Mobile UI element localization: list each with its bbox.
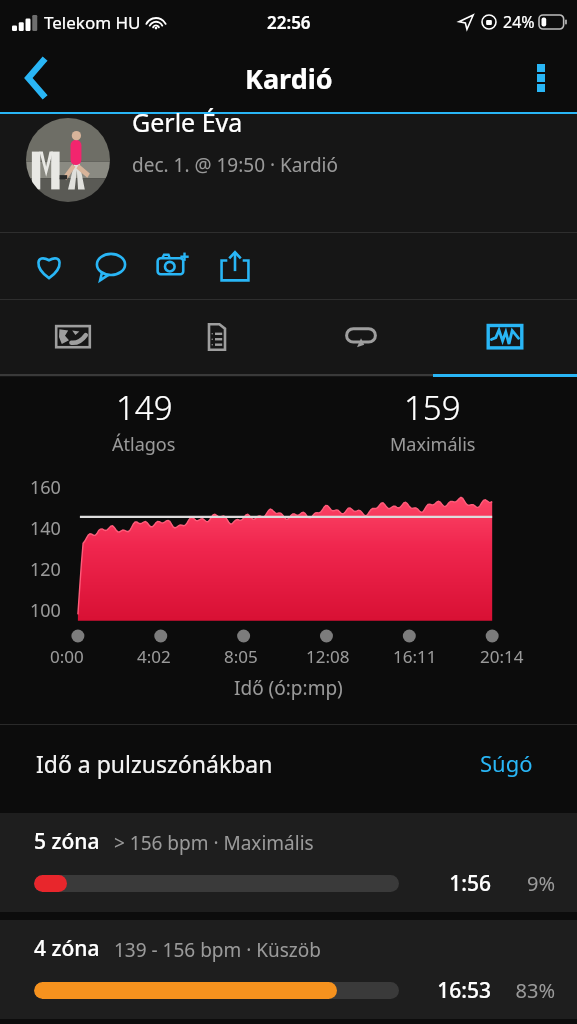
- staticText: > 156 bpm · Maximális: [114, 830, 314, 856]
- button[interactable]: Heart rate: [433, 300, 577, 374]
- button[interactable]: Map: [0, 300, 145, 374]
- staticText: 12:08: [306, 645, 350, 668]
- staticText: Maximális: [390, 432, 476, 457]
- staticText: 22:56: [267, 11, 311, 34]
- button[interactable]: Add photo: [142, 235, 204, 297]
- staticText: Telekom HU: [44, 11, 141, 34]
- staticText: 4 zóna: [34, 934, 100, 963]
- button[interactable]: Gerle Éva: [0, 114, 577, 232]
- staticText: 1:56: [419, 869, 491, 898]
- staticText: 83%: [501, 977, 555, 1004]
- button[interactable]: Back: [8, 50, 64, 106]
- button[interactable]: Share: [204, 235, 266, 297]
- button[interactable]: Laps: [289, 300, 433, 374]
- staticText: 100: [30, 598, 61, 624]
- button[interactable]: Like: [18, 235, 80, 297]
- button[interactable]: 5 zóna: [0, 813, 577, 912]
- staticText: Kardió: [245, 60, 333, 97]
- staticText: 149: [116, 385, 173, 430]
- staticText: Idő (ó:p:mp): [234, 675, 343, 701]
- staticText: 24%: [503, 11, 535, 33]
- button[interactable]: Súgó: [472, 740, 541, 786]
- staticText: Idő a pulzuszónákban: [36, 748, 472, 779]
- staticText: dec. 1. @ 19:50 · Kardió: [132, 152, 338, 178]
- staticText: Gerle Éva: [132, 105, 243, 139]
- staticText: 16:11: [393, 645, 437, 668]
- staticText: 120: [30, 557, 61, 583]
- staticText: 160: [30, 475, 61, 501]
- staticText: 4:02: [137, 645, 171, 668]
- staticText: 139 - 156 bpm · Küszöb: [114, 937, 321, 963]
- staticText: Átlagos: [112, 432, 176, 457]
- staticText: 9%: [501, 870, 555, 897]
- button[interactable]: Details: [145, 300, 289, 374]
- staticText: 159: [404, 385, 461, 430]
- staticText: 16:53: [419, 976, 491, 1005]
- staticText: 8:05: [224, 645, 258, 668]
- staticText: 0:00: [50, 645, 84, 668]
- staticText: Súgó: [480, 748, 533, 778]
- staticText: 20:14: [480, 645, 524, 668]
- staticText: 5 zóna: [34, 827, 100, 856]
- button[interactable]: Comment: [80, 235, 142, 297]
- button[interactable]: More options: [513, 50, 569, 106]
- staticText: 140: [30, 516, 61, 542]
- button[interactable]: 4 zóna: [0, 920, 577, 1019]
